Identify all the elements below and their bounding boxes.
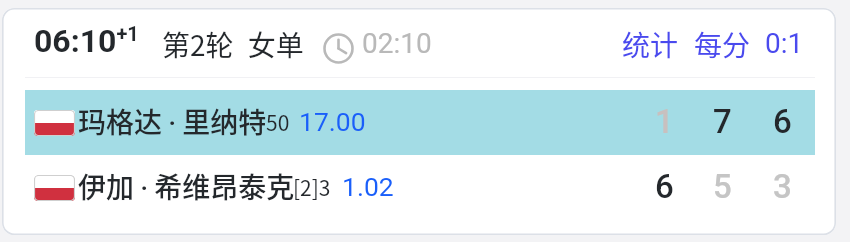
button[interactable]: 每分 bbox=[694, 24, 751, 65]
button[interactable] bbox=[25, 155, 815, 220]
staticText: 17.00 bbox=[299, 106, 366, 137]
staticText: 1 bbox=[655, 102, 674, 141]
button[interactable]: Remaining time bbox=[323, 33, 354, 64]
staticText: 7 bbox=[713, 102, 732, 141]
staticText: 6 bbox=[773, 102, 792, 141]
staticText: 每分 bbox=[694, 24, 751, 65]
staticText: 50 bbox=[266, 107, 290, 137]
button[interactable] bbox=[25, 90, 815, 155]
button[interactable]: 统计 bbox=[622, 24, 679, 65]
staticText: 第2轮 女单 bbox=[162, 24, 304, 65]
staticText: 5 bbox=[713, 167, 732, 206]
staticText: 统计 bbox=[622, 24, 679, 65]
staticText: 伊加·希维昂泰克 bbox=[78, 166, 295, 207]
staticText: 6 bbox=[655, 167, 674, 206]
staticText: [2]3 bbox=[293, 172, 331, 202]
staticText: 06:10+1 bbox=[34, 22, 139, 60]
button[interactable] bbox=[2, 8, 836, 235]
staticText: 3 bbox=[773, 167, 792, 206]
staticText: 02:10 bbox=[362, 27, 432, 60]
staticText: 0:1 bbox=[765, 27, 804, 60]
staticText: 1.02 bbox=[342, 171, 394, 202]
staticText: 玛格达·里纳特 bbox=[78, 101, 267, 142]
